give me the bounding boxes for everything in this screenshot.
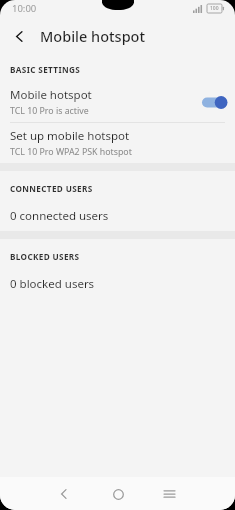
button[interactable]: Recent apps	[157, 482, 181, 506]
staticText: BLOCKED USERS	[10, 251, 80, 262]
button[interactable]: 0 connected users	[0, 201, 235, 231]
button[interactable]: Back	[52, 482, 76, 506]
button[interactable]: Navigate up	[6, 23, 32, 49]
staticText: 100	[210, 5, 219, 12]
staticText: Mobile hotspot	[10, 87, 92, 103]
staticText: Mobile hotspot	[40, 26, 146, 46]
button[interactable]: Set up mobile hotspot	[0, 123, 235, 163]
staticText: 0 connected users	[10, 208, 109, 224]
button[interactable]: Home	[106, 482, 130, 506]
staticText: TCL 10 Pro WPA2 PSK hotspot	[10, 146, 132, 158]
button[interactable]: 0 blocked users	[0, 269, 235, 299]
staticText: Set up mobile hotspot	[10, 128, 130, 144]
staticText: CONNECTED USERS	[10, 183, 93, 194]
button[interactable]: Mobile hotspot	[0, 82, 235, 122]
staticText: 10:00	[12, 2, 37, 15]
staticText: TCL 10 Pro is active	[10, 105, 89, 117]
staticText: 0 blocked users	[10, 276, 95, 292]
staticText: BASIC SETTINGS	[10, 64, 81, 75]
button[interactable]: Mobile hotspot toggle, on	[202, 95, 226, 110]
